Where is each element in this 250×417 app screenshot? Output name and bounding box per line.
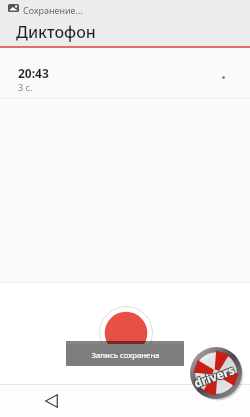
staticText: drivers: [191, 363, 236, 392]
staticText: drivers: [191, 362, 235, 391]
staticText: Диктофон: [16, 21, 96, 43]
staticText: 20:43: [18, 65, 49, 81]
staticText: drivers: [191, 361, 236, 391]
staticText: drivers: [193, 362, 238, 391]
staticText: drivers: [192, 360, 237, 389]
button[interactable]: 20:43: [0, 48, 250, 98]
staticText: drivers: [192, 361, 237, 390]
staticText: drivers: [190, 361, 235, 390]
button[interactable]: More options: [217, 71, 229, 83]
staticText: drivers: [192, 362, 237, 392]
staticText: Запись сохранена: [91, 350, 160, 361]
button[interactable]: Record: [99, 306, 153, 360]
staticText: drivers: [191, 360, 236, 390]
staticText: 3 с.: [18, 81, 33, 93]
staticText: Сохранение...: [23, 4, 83, 16]
button[interactable]: Back: [38, 388, 64, 414]
